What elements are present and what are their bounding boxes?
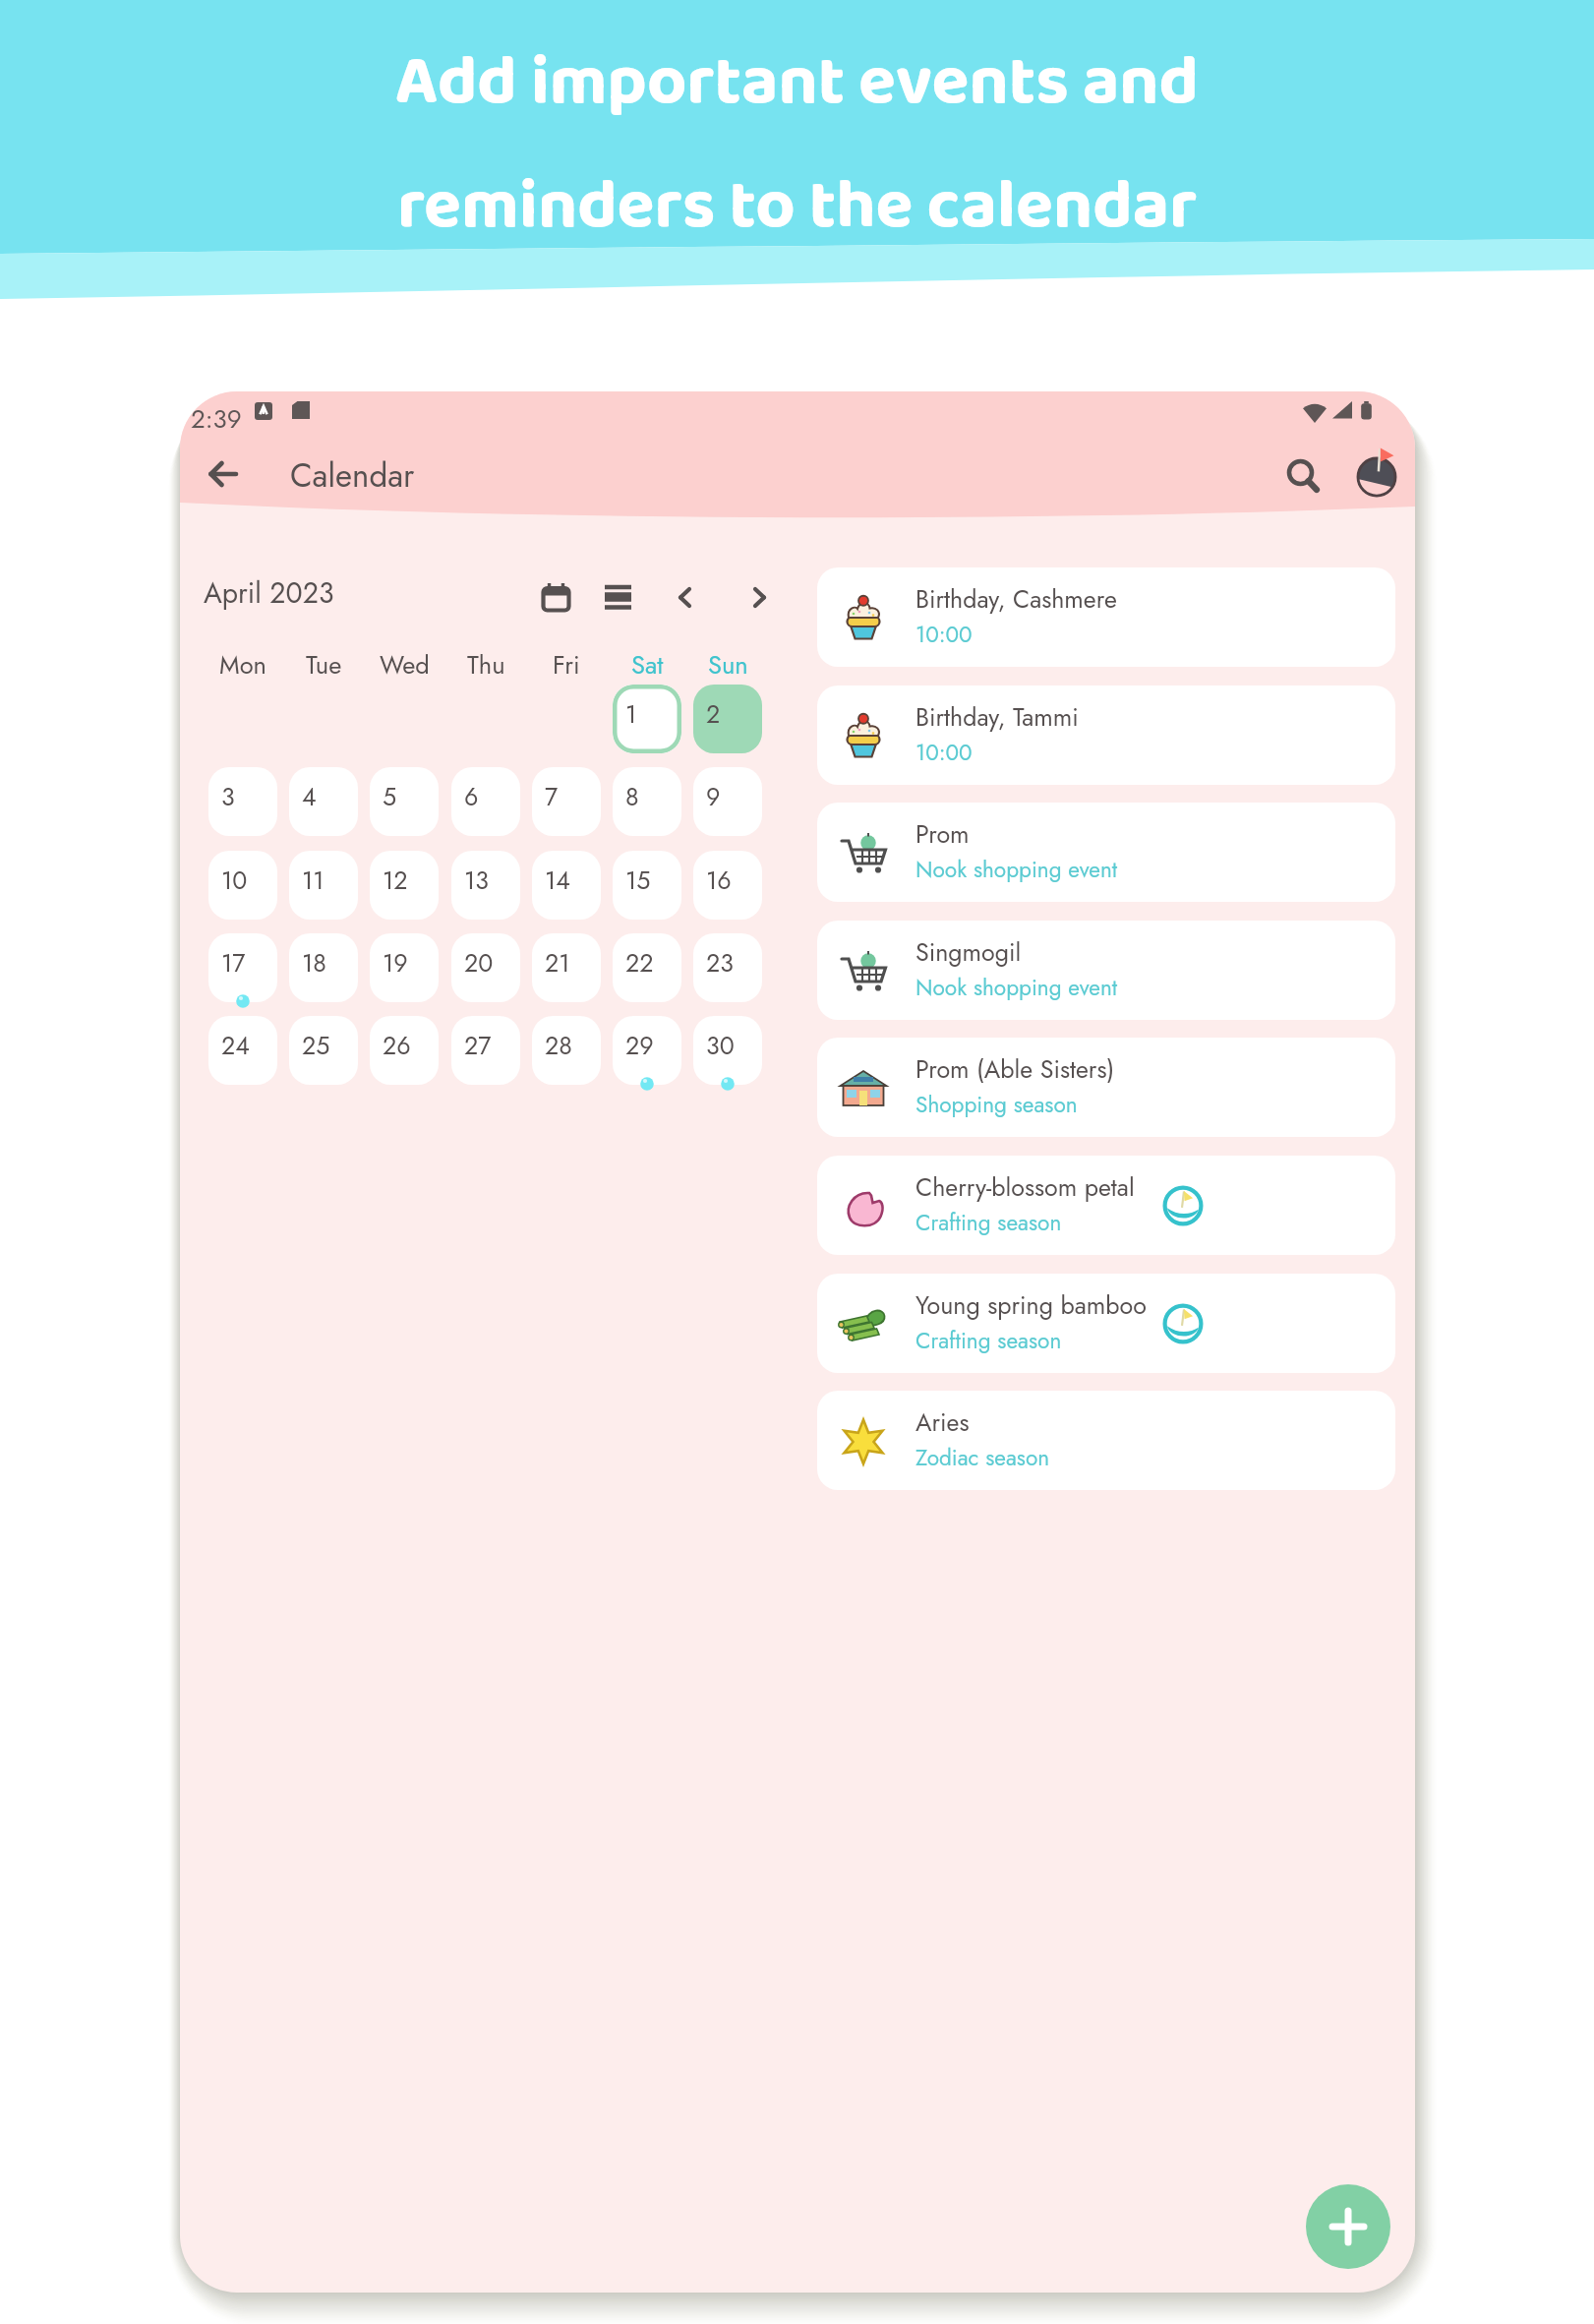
staticText: 3 <box>221 779 235 814</box>
staticText: 9 <box>706 779 721 814</box>
button[interactable]: 23 <box>693 933 762 1002</box>
staticText: Birthday, Tammi <box>915 699 1079 735</box>
staticText: Thu <box>467 647 505 681</box>
staticText: Zodiac season <box>915 1442 1050 1474</box>
button[interactable]: 30 <box>693 1016 762 1085</box>
button[interactable]: 5 <box>370 767 439 836</box>
staticText: Wed <box>380 647 430 681</box>
button[interactable]: 28 <box>532 1016 601 1085</box>
staticText: reminders to the calendar <box>397 152 1198 263</box>
staticText: 19 <box>383 945 408 981</box>
button[interactable]: 17 <box>208 933 277 1002</box>
button[interactable]: 16 <box>693 851 762 920</box>
staticText: 2 <box>706 696 721 732</box>
staticText: Aries <box>915 1404 970 1440</box>
button[interactable]: Previous month <box>661 573 708 621</box>
staticText: Fri <box>553 647 580 681</box>
staticText: 11 <box>302 863 325 898</box>
button[interactable]: 21 <box>532 933 601 1002</box>
staticText: 7 <box>545 779 559 814</box>
staticText: Young spring bamboo <box>915 1287 1147 1323</box>
button[interactable]: 3 <box>208 767 277 836</box>
staticText: 8 <box>625 779 639 814</box>
staticText: April 2023 <box>204 573 334 614</box>
staticText: Crafting season <box>915 1207 1062 1239</box>
button[interactable]: 26 <box>370 1016 439 1085</box>
button[interactable]: Search <box>1279 452 1328 502</box>
staticText: Sat <box>631 647 664 681</box>
staticText: Birthday, Cashmere <box>915 581 1117 617</box>
staticText: Nook shopping event <box>915 854 1118 886</box>
staticText: 13 <box>464 863 489 898</box>
button[interactable]: 10 <box>208 851 277 920</box>
button[interactable]: 9 <box>693 767 762 836</box>
staticText: 25 <box>302 1028 330 1063</box>
button[interactable]: 27 <box>451 1016 520 1085</box>
button[interactable]: 6 <box>451 767 520 836</box>
staticText: 24 <box>221 1028 250 1063</box>
button[interactable]: 2 <box>693 685 762 753</box>
staticText: 15 <box>625 863 651 898</box>
staticText: Nook shopping event <box>915 972 1118 1004</box>
staticText: 18 <box>302 945 326 981</box>
staticText: 30 <box>706 1028 735 1063</box>
staticText: Singmogil <box>915 934 1022 970</box>
button[interactable]: Prom (Able Sisters) <box>817 1038 1395 1137</box>
button[interactable]: Aries <box>817 1391 1395 1490</box>
button[interactable]: 15 <box>613 851 681 920</box>
button[interactable]: Add event <box>1306 2184 1390 2269</box>
staticText: Prom <box>915 816 970 852</box>
button[interactable]: Cherry-blossom petal <box>817 1156 1395 1255</box>
button[interactable]: 19 <box>370 933 439 1002</box>
staticText: 21 <box>545 945 570 981</box>
button[interactable]: 1 <box>613 685 681 753</box>
staticText: 28 <box>545 1028 572 1063</box>
button[interactable]: Month view <box>532 573 579 621</box>
button[interactable]: 4 <box>289 767 358 836</box>
button[interactable]: 7 <box>532 767 601 836</box>
staticText: 26 <box>383 1028 411 1063</box>
button[interactable]: 24 <box>208 1016 277 1085</box>
button[interactable]: 29 <box>613 1016 681 1085</box>
staticText: 20 <box>464 945 494 981</box>
staticText: 1 <box>625 696 637 732</box>
staticText: 2:39 <box>191 400 242 438</box>
staticText: Crafting season <box>915 1325 1062 1357</box>
button[interactable]: Back <box>198 448 249 500</box>
button[interactable]: Next month <box>736 573 783 621</box>
staticText: 12 <box>383 863 408 898</box>
button[interactable]: 11 <box>289 851 358 920</box>
button[interactable]: 12 <box>370 851 439 920</box>
button[interactable]: 20 <box>451 933 520 1002</box>
staticText: Prom (Able Sisters) <box>915 1051 1115 1087</box>
staticText: 5 <box>383 779 397 814</box>
staticText: 17 <box>221 945 246 981</box>
button[interactable]: 14 <box>532 851 601 920</box>
button[interactable]: 8 <box>613 767 681 836</box>
staticText: 10:00 <box>915 619 973 651</box>
staticText: Sun <box>708 647 748 681</box>
button[interactable]: 25 <box>289 1016 358 1085</box>
button[interactable]: Singmogil <box>817 921 1395 1020</box>
staticText: 16 <box>706 863 732 898</box>
button[interactable]: 22 <box>613 933 681 1002</box>
staticText: Calendar <box>290 452 415 500</box>
staticText: 10:00 <box>915 737 973 769</box>
staticText: 6 <box>464 779 479 814</box>
staticText: 10 <box>221 863 248 898</box>
button[interactable]: Profile <box>1350 448 1403 502</box>
button[interactable]: 13 <box>451 851 520 920</box>
staticText: 14 <box>545 863 570 898</box>
staticText: 4 <box>302 779 317 814</box>
button[interactable]: Birthday, Tammi <box>817 685 1395 785</box>
staticText: Mon <box>219 647 266 681</box>
staticText: 27 <box>464 1028 492 1063</box>
staticText: 22 <box>625 945 654 981</box>
staticText: Tue <box>306 647 342 681</box>
button[interactable]: Young spring bamboo <box>817 1274 1395 1373</box>
button[interactable]: Prom <box>817 803 1395 902</box>
staticText: Add important events and <box>395 29 1199 139</box>
button[interactable]: Agenda view <box>594 573 641 621</box>
button[interactable]: Birthday, Cashmere <box>817 567 1395 667</box>
button[interactable]: 18 <box>289 933 358 1002</box>
